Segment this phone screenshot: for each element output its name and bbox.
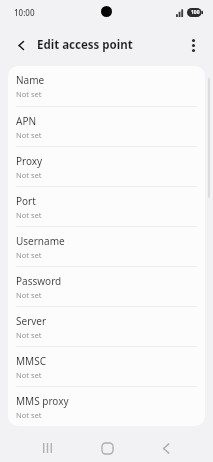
- staticText: MMS proxy: [16, 394, 69, 408]
- staticText: Not set: [16, 170, 42, 180]
- staticText: MMSC: [16, 354, 46, 368]
- button[interactable]: Server: [8, 307, 205, 346]
- staticText: Password: [16, 274, 62, 288]
- button[interactable]: Password: [8, 267, 205, 306]
- button[interactable]: Proxy: [8, 147, 205, 186]
- button[interactable]: MMS proxy: [8, 387, 205, 426]
- button[interactable]: Recents: [33, 434, 61, 462]
- button[interactable]: Home: [93, 434, 121, 462]
- staticText: Edit access point: [37, 37, 133, 53]
- button[interactable]: Back: [152, 434, 180, 462]
- staticText: Not set: [16, 290, 42, 300]
- button[interactable]: MMSC: [8, 347, 205, 386]
- staticText: 10:00: [14, 7, 35, 18]
- button[interactable]: Port: [8, 187, 205, 226]
- staticText: Not set: [16, 410, 42, 420]
- staticText: APN: [16, 114, 37, 128]
- button[interactable]: APN: [8, 107, 205, 146]
- staticText: Not set: [16, 250, 42, 260]
- staticText: Port: [16, 194, 36, 208]
- staticText: Not set: [16, 130, 42, 140]
- staticText: 100: [191, 9, 200, 16]
- button[interactable]: More options: [180, 32, 206, 58]
- staticText: Username: [16, 234, 65, 248]
- button[interactable]: Name: [8, 66, 205, 106]
- staticText: Proxy: [16, 154, 43, 168]
- staticText: Not set: [16, 210, 42, 220]
- button[interactable]: Back: [8, 32, 34, 58]
- staticText: Server: [16, 314, 47, 328]
- staticText: Not set: [16, 89, 42, 99]
- staticText: Not set: [16, 370, 42, 380]
- staticText: Not set: [16, 330, 42, 340]
- button[interactable]: Username: [8, 227, 205, 266]
- staticText: Name: [16, 73, 45, 87]
